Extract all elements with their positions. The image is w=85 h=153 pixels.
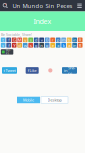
staticText: Un Mundo Sin Peces — [12, 2, 72, 10]
button[interactable]: Share on s — [28, 37, 33, 42]
button[interactable]: Share on r — [50, 37, 55, 42]
staticText: R — [79, 42, 82, 48]
button[interactable]: MORE — [1, 49, 13, 55]
button[interactable]: Share on a — [67, 43, 71, 48]
staticText: Y — [13, 42, 15, 48]
staticText: s — [30, 37, 32, 43]
staticText: v — [41, 37, 43, 43]
button[interactable]: Share on q — [45, 43, 49, 48]
button[interactable]: Desktop — [41, 97, 68, 103]
staticText: t — [2, 37, 4, 43]
button[interactable]: Share on s — [28, 43, 33, 48]
staticText: t — [4, 68, 5, 73]
button[interactable]: Share on t — [1, 43, 5, 48]
staticText: p — [57, 37, 60, 43]
staticText: R — [79, 37, 82, 43]
staticText: x — [57, 42, 59, 48]
button[interactable]: Share on b — [67, 37, 71, 42]
staticText: b — [68, 37, 71, 43]
button[interactable]: Mobile — [17, 97, 40, 103]
staticText: r — [52, 37, 54, 43]
button[interactable]: Share on f — [6, 43, 11, 48]
button[interactable]: Share on x — [56, 43, 60, 48]
staticText: n — [40, 42, 43, 48]
staticText: Tweet — [5, 68, 15, 73]
button[interactable]: Share on Y — [12, 43, 16, 48]
button[interactable]: Share on R — [78, 37, 82, 42]
staticText: B — [46, 37, 49, 43]
staticText: m — [62, 37, 66, 43]
staticText: in — [64, 68, 67, 73]
button[interactable]: f — [26, 67, 39, 74]
staticText: y — [24, 37, 26, 43]
button[interactable]: Share on d — [17, 43, 22, 48]
staticText: Desktop — [47, 97, 61, 102]
staticText: q — [46, 42, 49, 48]
staticText: f — [8, 37, 9, 43]
staticText: g — [35, 42, 38, 48]
staticText: in — [73, 42, 77, 48]
staticText: Index — [33, 16, 51, 26]
staticText: w — [24, 42, 27, 48]
button[interactable]: t — [2, 67, 17, 74]
button[interactable]: Pin it — [47, 67, 53, 74]
staticText: Be Sociable, Share! — [1, 32, 32, 37]
button[interactable]: Share on R — [78, 43, 82, 48]
button[interactable]: Share on f — [6, 37, 11, 42]
staticText: in — [73, 37, 77, 43]
staticText: s — [30, 42, 32, 48]
staticText: MORE — [6, 48, 11, 56]
staticText: d — [35, 37, 38, 43]
button[interactable]: Share on g — [34, 43, 38, 48]
staticText: M — [18, 37, 22, 43]
button[interactable]: Share on w — [23, 43, 27, 48]
staticText: k — [63, 42, 65, 48]
button[interactable]: Share on y — [23, 37, 27, 42]
staticText: a — [68, 42, 70, 48]
button[interactable]: Share on k — [61, 43, 66, 48]
button[interactable]: Share on in — [72, 37, 77, 42]
staticText: Share — [68, 65, 75, 76]
button[interactable]: Share on G — [12, 37, 16, 42]
staticText: G — [13, 37, 16, 43]
button[interactable]: Share on v — [39, 37, 44, 42]
button[interactable]: in — [62, 67, 77, 74]
button[interactable]: Share on p — [56, 37, 60, 42]
button[interactable]: Share on t — [1, 37, 5, 42]
staticText: t — [2, 42, 4, 48]
staticText: f — [8, 42, 9, 48]
button[interactable]: Share on e — [50, 43, 55, 48]
button[interactable]: Menu — [74, 0, 85, 11]
button[interactable]: Search — [0, 0, 11, 11]
staticText: Like — [30, 68, 37, 73]
button[interactable]: Share on M — [17, 37, 22, 42]
button[interactable]: Share on d — [34, 37, 38, 42]
staticText: e — [52, 42, 54, 48]
staticText: f — [28, 68, 29, 73]
button[interactable]: Share on m — [61, 37, 66, 42]
button[interactable]: Share on B — [45, 37, 49, 42]
staticText: d — [18, 42, 21, 48]
button[interactable]: Share on n — [39, 43, 44, 48]
staticText: Mobile — [23, 97, 34, 102]
button[interactable]: Share on in — [72, 43, 77, 48]
